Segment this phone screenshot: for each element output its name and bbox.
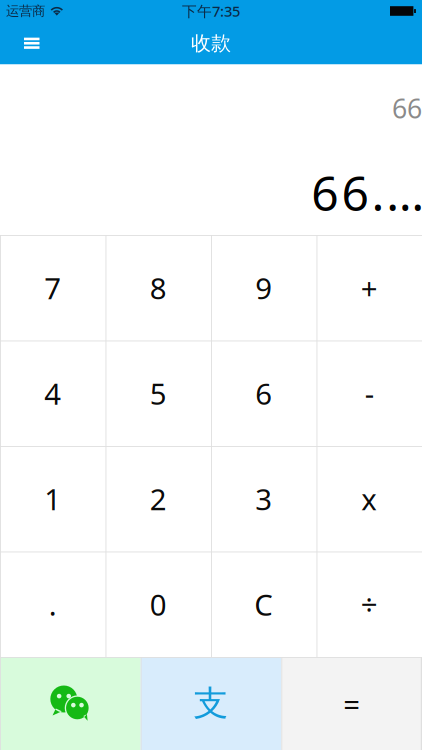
staticText: 1	[44, 479, 61, 518]
staticText: 收款	[191, 31, 231, 56]
staticText: 66	[392, 90, 422, 126]
staticText: -	[365, 374, 374, 413]
button[interactable]: 9	[211, 235, 316, 340]
staticText: 运营商	[6, 3, 45, 19]
button[interactable]: Alipay	[141, 657, 281, 750]
button[interactable]: WeChat Pay	[0, 657, 141, 750]
staticText: 3	[255, 479, 272, 518]
staticText: 支	[193, 682, 228, 725]
button[interactable]: C	[211, 551, 316, 657]
button[interactable]: 1	[0, 446, 105, 551]
button[interactable]: 7	[0, 235, 105, 340]
staticText: 4	[44, 374, 61, 413]
button[interactable]: ÷	[316, 551, 422, 657]
staticText: 下午7:35	[182, 1, 240, 21]
staticText: 9	[255, 268, 272, 307]
staticText: +	[361, 268, 378, 307]
button[interactable]: x	[316, 446, 422, 551]
staticText: x	[361, 479, 377, 518]
staticText: =	[343, 684, 360, 723]
staticText: 5	[150, 374, 167, 413]
button[interactable]: Menu	[0, 23, 57, 64]
staticText: C	[254, 585, 273, 624]
button[interactable]: 2	[105, 446, 211, 551]
staticText: 0	[150, 585, 167, 624]
staticText: 6	[255, 374, 272, 413]
staticText: ÷	[361, 585, 378, 624]
button[interactable]: .	[0, 551, 105, 657]
button[interactable]: -	[316, 340, 422, 446]
button[interactable]: 0	[105, 551, 211, 657]
staticText: 66.00	[311, 160, 422, 224]
button[interactable]: Equals	[281, 657, 422, 750]
staticText: 7	[44, 268, 61, 307]
button[interactable]: 3	[211, 446, 316, 551]
button[interactable]: 8	[105, 235, 211, 340]
button[interactable]: 6	[211, 340, 316, 446]
staticText: .	[49, 585, 57, 624]
button[interactable]: 4	[0, 340, 105, 446]
staticText: 2	[150, 479, 167, 518]
button[interactable]: +	[316, 235, 422, 340]
button[interactable]: 5	[105, 340, 211, 446]
staticText: 8	[150, 268, 167, 307]
